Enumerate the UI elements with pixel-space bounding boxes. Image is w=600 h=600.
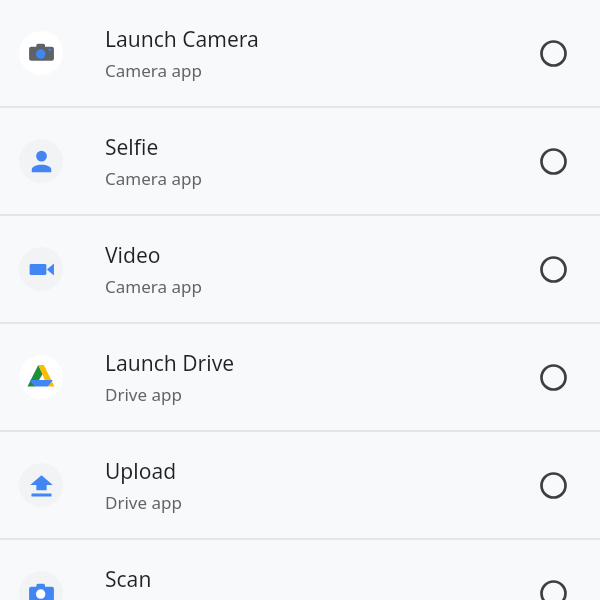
button[interactable]: Scan bbox=[0, 540, 600, 600]
staticText: Launch Camera bbox=[105, 25, 259, 54]
button[interactable]: Launch Drive bbox=[0, 324, 600, 430]
staticText: Launch Drive bbox=[105, 349, 235, 378]
staticText: Scan bbox=[105, 565, 152, 594]
button[interactable]: Launch Camera bbox=[0, 0, 600, 106]
button[interactable]: Select Launch Drive bbox=[506, 324, 600, 430]
staticText: Camera app bbox=[105, 59, 202, 82]
button[interactable]: Video bbox=[0, 216, 600, 322]
staticText: Camera app bbox=[105, 275, 202, 298]
button[interactable]: Select Selfie bbox=[506, 108, 600, 214]
staticText: Drive app bbox=[105, 383, 182, 406]
staticText: Camera app bbox=[105, 167, 202, 190]
staticText: Video bbox=[105, 241, 161, 270]
button[interactable]: Select Launch Camera bbox=[506, 0, 600, 106]
button[interactable]: Select Video bbox=[506, 216, 600, 322]
button[interactable]: Select Scan bbox=[506, 540, 600, 600]
staticText: Selfie bbox=[105, 133, 159, 162]
staticText: Drive app bbox=[105, 491, 182, 514]
staticText: Upload bbox=[105, 457, 177, 486]
button[interactable]: Select Upload bbox=[506, 432, 600, 538]
button[interactable]: Upload bbox=[0, 432, 600, 538]
button[interactable]: Selfie bbox=[0, 108, 600, 214]
